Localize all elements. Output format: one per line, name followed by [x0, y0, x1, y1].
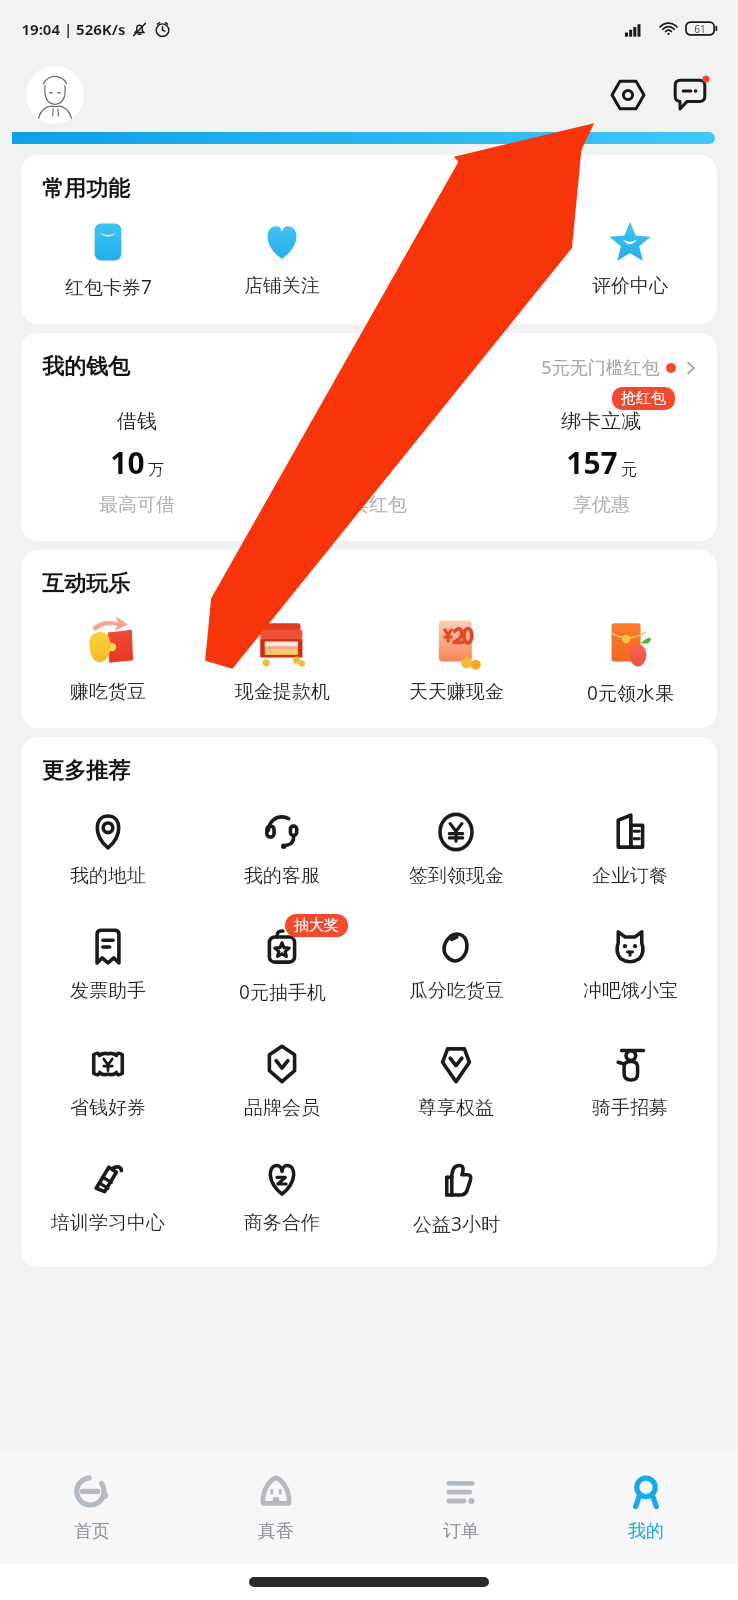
staticText: 抢红包: [621, 389, 666, 408]
staticText: 157: [566, 442, 618, 483]
button[interactable]: 商务合作: [195, 1146, 369, 1235]
staticText: 常用功能: [42, 175, 130, 203]
staticText: 冲吧饿小宝: [583, 979, 678, 1003]
button[interactable]: 订单: [368, 1452, 553, 1564]
button[interactable]: 绑卡立减: [485, 387, 717, 517]
staticText: 万: [148, 460, 164, 480]
button[interactable]: 赚吃货豆: [21, 610, 195, 704]
staticText: 借钱: [117, 409, 157, 434]
staticText: 签到领现金: [409, 864, 504, 888]
staticText: 店铺关注: [244, 274, 320, 298]
button[interactable]: 培训学习中心: [21, 1146, 195, 1235]
button[interactable]: 借钱: [21, 387, 253, 517]
button[interactable]: 省钱好券: [21, 1031, 195, 1120]
staticText: 天天赚现金: [409, 680, 504, 704]
button[interactable]: 瓜分吃货豆: [369, 914, 543, 1003]
button[interactable]: 我的客服: [195, 799, 369, 888]
button[interactable]: Profile avatar: [26, 66, 84, 124]
staticText: 抽大奖: [294, 916, 339, 935]
staticText: 赚吃货豆: [70, 680, 146, 704]
button[interactable]: 公益3小时: [369, 1146, 543, 1237]
staticText: 元: [621, 460, 637, 480]
staticText: 5元无门槛红包: [541, 355, 660, 380]
staticText: 10: [110, 442, 145, 483]
button[interactable]: Scan: [602, 69, 654, 121]
staticText: 公益3小时: [413, 1211, 500, 1237]
button[interactable]: 骑手招募: [543, 1031, 717, 1120]
button[interactable]: 天天神卡: [253, 387, 485, 517]
staticText: 绑卡立减: [561, 409, 641, 434]
button[interactable]: 发票助手: [21, 914, 195, 1003]
staticText: 我的客服: [244, 864, 320, 888]
button[interactable]: 真香: [184, 1452, 368, 1564]
button[interactable]: 品牌会员: [195, 1031, 369, 1120]
staticText: 评价中心: [592, 274, 668, 298]
staticText: 真香: [258, 1520, 294, 1543]
button[interactable]: Messages: [664, 69, 716, 121]
staticText: 0元领水果: [587, 680, 674, 706]
staticText: 0元抽手机: [239, 979, 326, 1005]
staticText: 元: [372, 460, 388, 480]
staticText: 省钱好券: [70, 1096, 146, 1120]
button[interactable]: 尊享权益: [369, 1031, 543, 1120]
button[interactable]: 我的地址: [21, 799, 195, 888]
button[interactable]: 现金提款机: [195, 610, 369, 704]
button[interactable]: 签到领现金: [369, 799, 543, 888]
button[interactable]: 我的: [553, 1452, 738, 1564]
staticText: 首页: [74, 1520, 110, 1543]
staticText: 品牌会员: [244, 1096, 320, 1120]
button[interactable]: 企业订餐: [543, 799, 717, 888]
staticText: 企业订餐: [592, 864, 668, 888]
button[interactable]: 0元领水果: [543, 610, 717, 706]
staticText: 尊享权益: [418, 1096, 494, 1120]
staticText: 最高可借: [99, 493, 175, 517]
button[interactable]: 购物车: [369, 217, 543, 300]
button[interactable]: 店铺关注: [195, 217, 369, 300]
button[interactable]: 0元抽手机: [195, 914, 369, 1005]
button[interactable]: 冲吧饿小宝: [543, 914, 717, 1003]
staticText: 我的地址: [70, 864, 146, 888]
staticText: 外卖红包: [331, 493, 407, 517]
staticText: 61: [694, 22, 706, 36]
staticText: 红包卡券7: [65, 274, 152, 300]
staticText: 瓜分吃货豆: [409, 979, 504, 1003]
staticText: 商务合作: [244, 1211, 320, 1235]
button[interactable]: 红包卡券7: [21, 217, 195, 302]
staticText: 骑手招募: [592, 1096, 668, 1120]
button[interactable]: 评价中心: [543, 217, 717, 300]
staticText: 我的: [628, 1520, 664, 1543]
staticText: 19:04 | 526K/s: [21, 19, 126, 39]
staticText: 发票助手: [70, 979, 146, 1003]
button[interactable]: 天天赚现金: [369, 610, 543, 704]
staticText: 培训学习中心: [51, 1211, 165, 1235]
button[interactable]: 首页: [0, 1452, 184, 1564]
staticText: 我的钱包: [42, 353, 130, 381]
staticText: 互动玩乐: [42, 570, 130, 598]
staticText: 更多推荐: [42, 757, 130, 785]
staticText: 现金提款机: [235, 680, 330, 704]
staticText: 订单: [443, 1520, 479, 1543]
button[interactable]: 5元无门槛红包: [541, 355, 699, 380]
staticText: 享优惠: [573, 493, 630, 517]
